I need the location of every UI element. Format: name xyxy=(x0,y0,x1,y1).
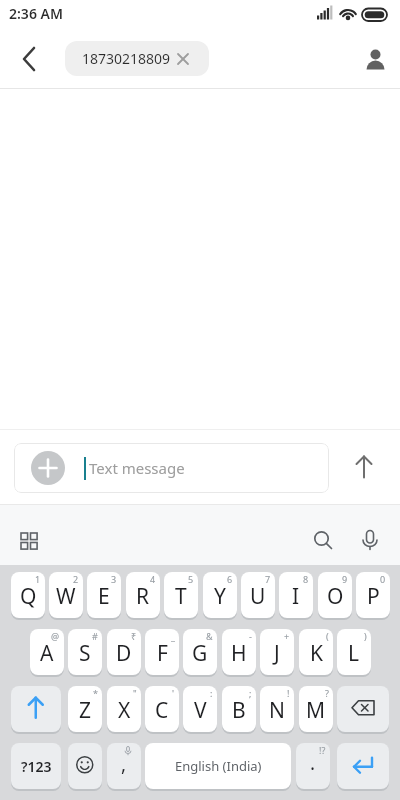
staticText: ₹ xyxy=(131,630,137,642)
staticText: A xyxy=(40,639,54,668)
staticText: - xyxy=(249,630,252,642)
staticText: 9 xyxy=(342,573,348,585)
staticText: I xyxy=(292,582,300,611)
button[interactable]: 18730218809 xyxy=(65,41,209,76)
staticText: 8 xyxy=(303,573,309,585)
staticText: S xyxy=(79,639,91,668)
staticText: ? xyxy=(325,687,329,699)
button[interactable] xyxy=(337,686,389,732)
staticText: R xyxy=(136,582,150,611)
staticText: @ xyxy=(51,630,60,642)
button[interactable]: A xyxy=(30,629,64,675)
staticText: N xyxy=(269,696,285,725)
staticText: + xyxy=(284,630,290,642)
staticText: Y xyxy=(214,582,226,611)
staticText: E xyxy=(98,582,110,611)
button[interactable]: . xyxy=(296,743,330,789)
button[interactable]: Q xyxy=(11,572,45,618)
staticText: U xyxy=(250,582,266,611)
button[interactable]: C xyxy=(145,686,179,732)
button[interactable]: T xyxy=(164,572,198,618)
staticText: F xyxy=(157,639,168,668)
button[interactable]: F xyxy=(145,629,179,675)
staticText: W xyxy=(56,582,76,611)
staticText: ; xyxy=(249,687,252,699)
button[interactable]: U xyxy=(241,572,275,618)
button[interactable]: R xyxy=(126,572,160,618)
staticText: . xyxy=(310,750,316,776)
staticText: J xyxy=(274,639,280,668)
staticText: B xyxy=(232,696,246,725)
staticText: D xyxy=(116,639,132,668)
button[interactable] xyxy=(350,452,378,482)
staticText: 5 xyxy=(188,573,194,585)
button[interactable] xyxy=(31,451,65,485)
button[interactable]: I xyxy=(279,572,313,618)
staticText: Z xyxy=(79,696,92,725)
button[interactable] xyxy=(11,686,61,732)
staticText: ! xyxy=(287,687,290,699)
button[interactable]: K xyxy=(299,629,333,675)
button[interactable] xyxy=(362,42,390,72)
button[interactable]: ?123 xyxy=(11,743,61,789)
staticText: P xyxy=(367,582,380,611)
staticText: 2:36 AM xyxy=(9,4,63,23)
staticText: !? xyxy=(319,744,326,756)
button[interactable]: W xyxy=(49,572,83,618)
button[interactable]: G xyxy=(183,629,217,675)
button[interactable] xyxy=(337,743,389,789)
button[interactable]: E xyxy=(87,572,121,618)
button[interactable] xyxy=(357,527,383,553)
button[interactable]: V xyxy=(183,686,217,732)
staticText: G xyxy=(192,639,208,668)
staticText: 1 xyxy=(35,573,41,585)
staticText: Text message xyxy=(89,458,185,478)
staticText: , xyxy=(121,751,127,777)
staticText: ( xyxy=(326,630,329,642)
staticText: English (India) xyxy=(175,757,262,775)
staticText: ) xyxy=(364,630,367,642)
button[interactable]: N xyxy=(260,686,294,732)
staticText: O xyxy=(327,582,344,611)
button[interactable]: H xyxy=(222,629,256,675)
staticText: & xyxy=(206,630,213,642)
staticText: : xyxy=(210,687,213,699)
staticText: 4 xyxy=(150,573,156,585)
staticText: Q xyxy=(20,582,37,611)
button[interactable] xyxy=(16,528,42,554)
button[interactable]: D xyxy=(107,629,141,675)
button[interactable] xyxy=(310,527,336,553)
button[interactable]: L xyxy=(337,629,371,675)
staticText: 3 xyxy=(111,573,117,585)
button[interactable]: J xyxy=(260,629,294,675)
staticText: " xyxy=(133,687,137,699)
button[interactable]: English (India) xyxy=(145,743,291,789)
button[interactable]: P xyxy=(356,572,390,618)
staticText: 18730218809 xyxy=(82,49,171,68)
staticText: ?123 xyxy=(21,757,52,776)
button[interactable] xyxy=(68,743,102,789)
button[interactable]: X xyxy=(107,686,141,732)
button[interactable] xyxy=(12,46,46,74)
staticText: M xyxy=(306,696,326,725)
button[interactable]: Text message xyxy=(14,443,329,493)
staticText: K xyxy=(310,639,323,668)
staticText: T xyxy=(175,582,187,611)
staticText: ' xyxy=(172,687,175,699)
staticText: 2 xyxy=(73,573,79,585)
button[interactable]: S xyxy=(68,629,102,675)
button[interactable]: B xyxy=(222,686,256,732)
staticText: H xyxy=(231,639,247,668)
staticText: V xyxy=(194,696,207,725)
button[interactable]: Y xyxy=(203,572,237,618)
staticText: X xyxy=(118,696,131,725)
staticText: # xyxy=(92,630,98,642)
staticText: * xyxy=(93,687,98,699)
button[interactable]: Z xyxy=(68,686,102,732)
staticText: 7 xyxy=(265,573,271,585)
staticText: 0 xyxy=(380,573,386,585)
button[interactable]: O xyxy=(318,572,352,618)
staticText: _ xyxy=(171,630,175,642)
button[interactable]: , xyxy=(107,743,141,789)
button[interactable]: M xyxy=(299,686,333,732)
